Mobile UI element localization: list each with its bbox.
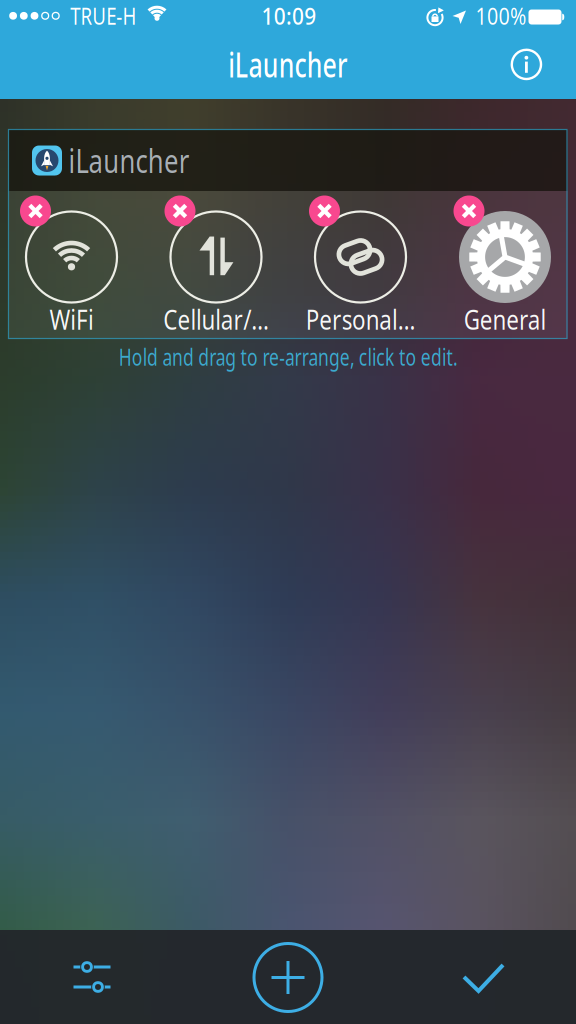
button[interactable]: Done xyxy=(395,931,571,1024)
staticText: 100% xyxy=(470,0,532,31)
button[interactable]: WiFi xyxy=(0,200,144,332)
staticText: 10:09 xyxy=(257,0,320,31)
staticText: Personal… xyxy=(292,300,429,338)
staticText: TRUE-H xyxy=(61,0,146,31)
button[interactable]: Info xyxy=(504,42,548,86)
button[interactable]: Personal… xyxy=(288,200,433,332)
staticText: Hold and drag to re-arrange, click to ed… xyxy=(56,341,520,372)
button[interactable]: Cellular/… xyxy=(143,200,288,332)
staticText: Cellular/… xyxy=(150,300,282,338)
button[interactable]: Add xyxy=(198,930,378,1024)
button[interactable]: Remove Cellular xyxy=(164,195,195,226)
button[interactable]: General xyxy=(432,200,576,332)
staticText: General xyxy=(453,300,556,338)
button[interactable]: Remove General xyxy=(453,195,484,226)
staticText: iLauncher xyxy=(205,41,371,87)
staticText: WiFi xyxy=(44,300,99,338)
staticText: iLauncher xyxy=(50,138,207,182)
button[interactable]: Settings xyxy=(4,930,180,1024)
button[interactable]: Remove Personal Hotspot xyxy=(309,195,340,226)
button[interactable]: Remove WiFi xyxy=(20,195,51,226)
